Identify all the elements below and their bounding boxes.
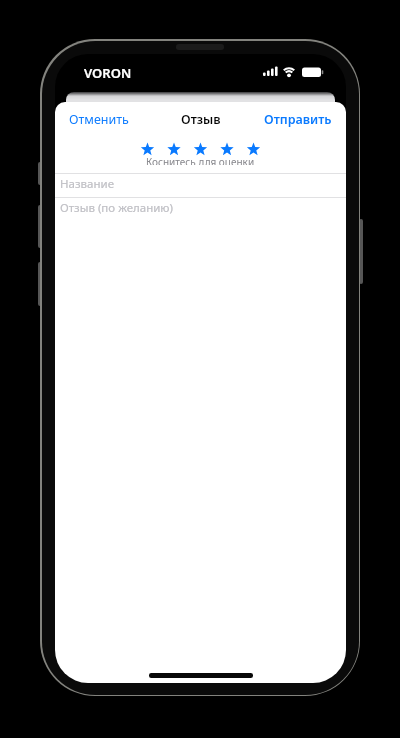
staticText: Отправить [264, 111, 332, 128]
button[interactable]: Отменить [69, 111, 129, 128]
staticText: Отзыв (по желанию) [60, 200, 173, 216]
staticText: Отзыв [181, 111, 221, 128]
button[interactable] [140, 142, 261, 157]
button[interactable]: Отправить [264, 111, 332, 128]
staticText: VORON [84, 64, 132, 82]
staticText: Отменить [69, 111, 129, 128]
staticText: Коснитесь для оценки [146, 155, 255, 165]
button[interactable]: Название [55, 173, 346, 194]
button[interactable]: Отзыв (по желанию) [55, 196, 346, 219]
staticText: Название [60, 176, 114, 192]
